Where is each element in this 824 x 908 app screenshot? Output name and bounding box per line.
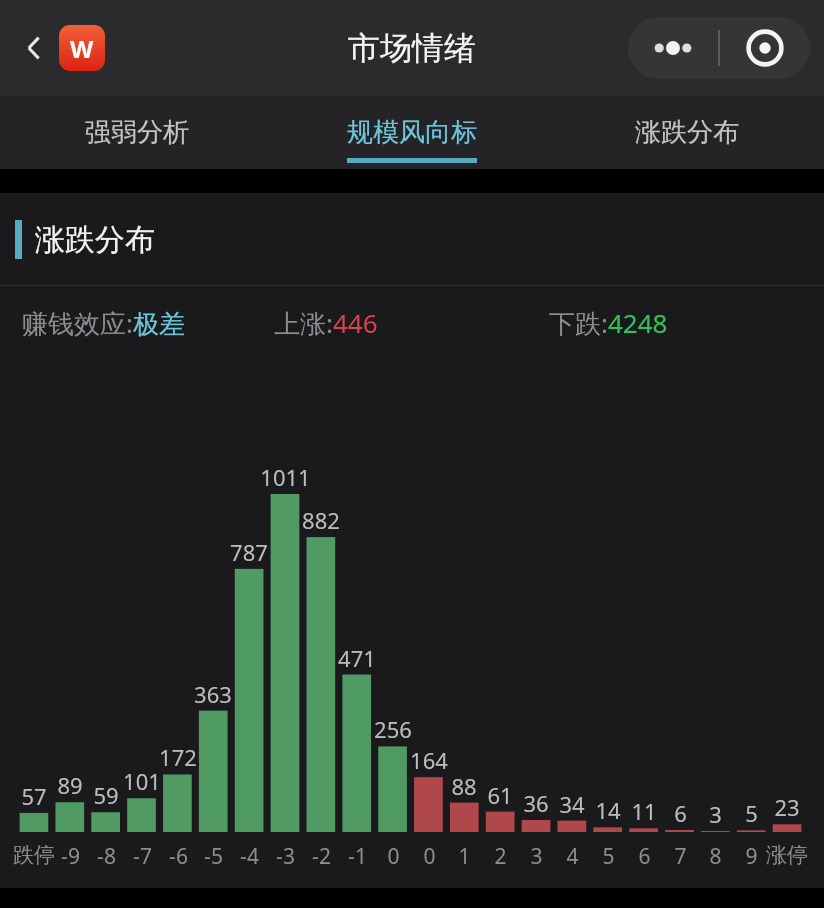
staticText: 涨停: [766, 842, 808, 868]
staticText: 涨跌分布: [35, 221, 155, 259]
staticText: 涨跌分布: [635, 116, 739, 149]
staticText: 4: [566, 842, 579, 871]
staticText: 11: [631, 796, 657, 826]
button[interactable]: Close: [720, 17, 810, 79]
staticText: 9: [745, 842, 758, 871]
staticText: 89: [57, 770, 83, 800]
staticText: -4: [240, 842, 259, 871]
staticText: 8: [709, 842, 722, 871]
staticText: -5: [204, 842, 223, 871]
staticText: 164: [410, 745, 448, 775]
staticText: 2: [494, 842, 507, 871]
staticText: W: [70, 32, 94, 65]
staticText: 0: [423, 842, 436, 871]
staticText: 5: [602, 842, 615, 871]
staticText: 882: [302, 505, 340, 535]
button[interactable]: 涨跌分布: [549, 96, 824, 169]
staticText: -2: [312, 842, 331, 871]
staticText: 市场情绪: [348, 28, 476, 68]
staticText: 57: [21, 781, 47, 811]
staticText: 下跌:4248: [549, 305, 668, 341]
staticText: 0: [387, 842, 400, 871]
staticText: 6: [638, 842, 651, 871]
staticText: 14: [595, 795, 621, 825]
staticText: -1: [348, 842, 367, 871]
staticText: 34: [559, 789, 585, 819]
staticText: 强弱分析: [85, 116, 189, 149]
staticText: 赚钱效应:极差: [22, 305, 185, 341]
button[interactable]: 强弱分析: [0, 96, 274, 169]
staticText: 7: [674, 842, 687, 871]
staticText: 101: [123, 766, 161, 796]
button[interactable]: 上涨:446: [274, 305, 549, 341]
staticText: 5: [745, 798, 758, 828]
staticText: 471: [338, 643, 376, 673]
staticText: 1011: [260, 462, 311, 492]
staticText: 1: [458, 842, 471, 871]
staticText: 跌停: [13, 842, 55, 868]
button[interactable]: Back: [10, 24, 58, 72]
staticText: 61: [487, 780, 513, 810]
button[interactable]: App icon: [59, 25, 105, 71]
staticText: 787: [230, 537, 268, 567]
button[interactable]: More options: [628, 17, 718, 79]
staticText: 88: [451, 771, 477, 801]
staticText: 59: [93, 780, 119, 810]
staticText: 23: [774, 792, 800, 822]
staticText: 36: [523, 788, 549, 818]
button[interactable]: 赚钱效应:极差: [22, 305, 274, 341]
staticText: 256: [374, 714, 412, 744]
staticText: 6: [674, 798, 687, 828]
staticText: -8: [97, 842, 116, 871]
button[interactable]: 下跌:4248: [549, 305, 824, 341]
staticText: 3: [709, 799, 722, 829]
staticText: 上涨:446: [274, 305, 378, 341]
button[interactable]: 规模风向标: [274, 96, 549, 169]
staticText: -3: [276, 842, 295, 871]
staticText: 3: [530, 842, 543, 871]
staticText: -9: [61, 842, 80, 871]
staticText: 172: [159, 742, 197, 772]
staticText: 363: [194, 679, 232, 709]
staticText: -6: [169, 842, 188, 871]
staticText: -7: [133, 842, 152, 871]
staticText: 规模风向标: [347, 116, 477, 149]
